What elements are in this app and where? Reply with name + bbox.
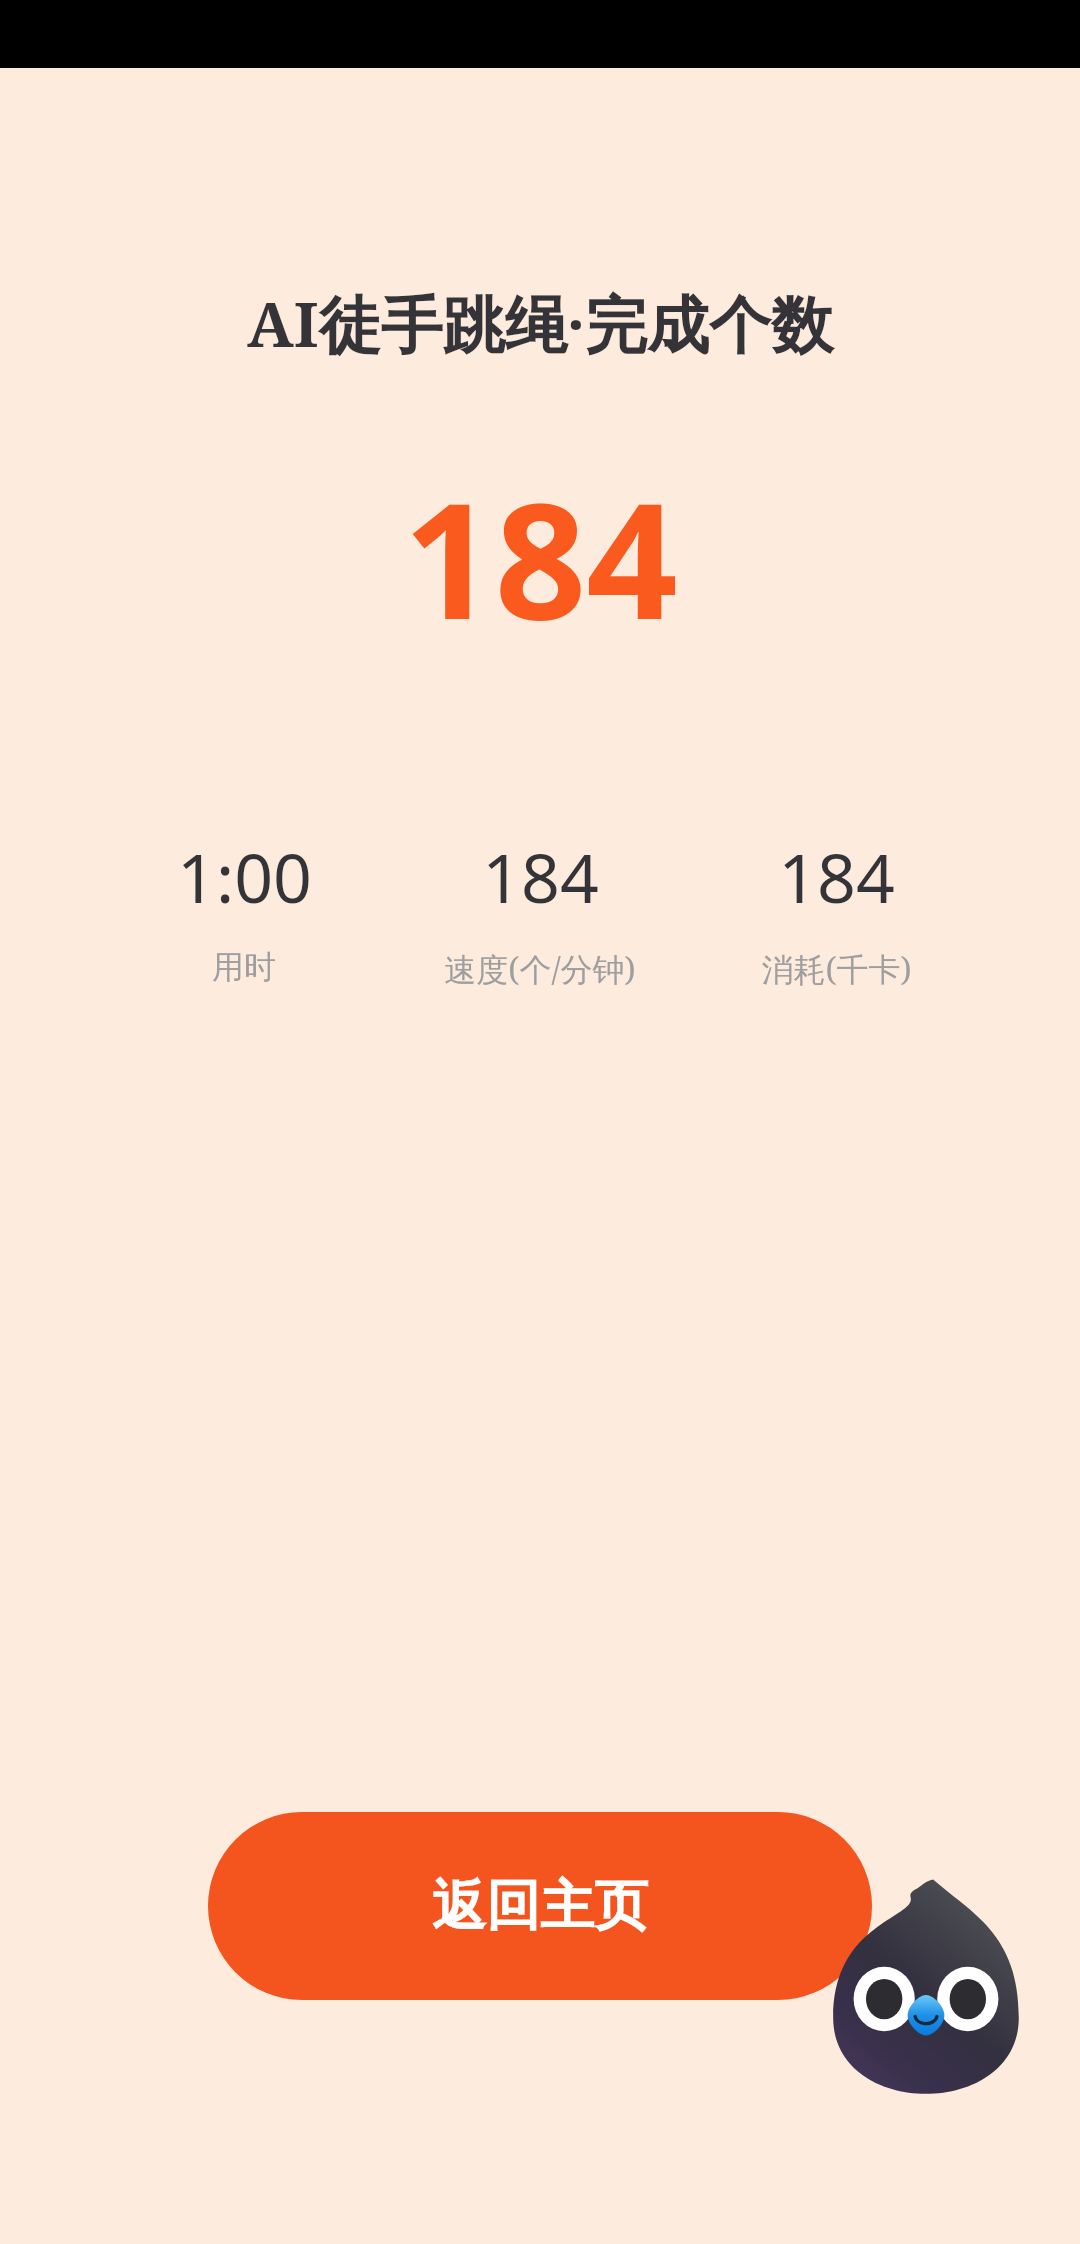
staticText: 速度(个/分钟) bbox=[444, 947, 636, 991]
staticText: AI徒手跳绳·完成个数 bbox=[247, 281, 833, 366]
button[interactable]: Assistant mascot bbox=[824, 1876, 1028, 2106]
button[interactable]: 1:00 bbox=[96, 830, 392, 987]
button[interactable]: 返回主页 bbox=[208, 1812, 872, 2000]
staticText: 184 bbox=[403, 448, 678, 666]
staticText: 用时 bbox=[212, 947, 276, 987]
staticText: 184 bbox=[778, 830, 895, 923]
staticText: 1:00 bbox=[177, 830, 312, 923]
button[interactable]: 184 bbox=[392, 830, 688, 991]
staticText: 184 bbox=[482, 830, 599, 923]
button[interactable]: 184 bbox=[688, 830, 984, 991]
staticText: 返回主页 bbox=[432, 1872, 648, 1940]
staticText: 消耗(千卡) bbox=[761, 947, 912, 991]
